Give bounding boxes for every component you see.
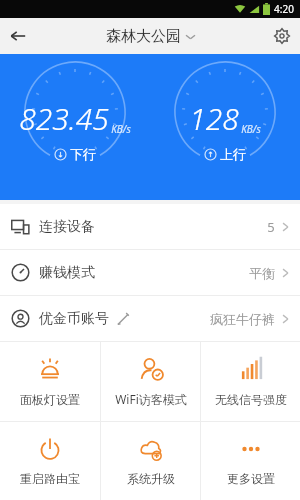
button[interactable]: 优金币账号: [0, 296, 300, 341]
button[interactable]: 赚钱模式: [0, 250, 300, 295]
staticText: 疯狂牛仔裤: [210, 311, 275, 327]
staticText: 无线信号强度: [215, 392, 287, 407]
staticText: 面板灯设置: [20, 392, 80, 407]
staticText: 下行: [70, 146, 96, 162]
button[interactable]: Settings: [264, 18, 300, 54]
button[interactable]: 更多设置: [201, 422, 300, 500]
staticText: 重启路由宝: [20, 471, 80, 486]
staticText: 优金币账号: [39, 310, 109, 328]
staticText: 128: [189, 98, 239, 139]
staticText: 823.45: [19, 98, 109, 139]
staticText: 赚钱模式: [39, 264, 95, 282]
button[interactable]: Edit: [115, 311, 131, 327]
button[interactable]: 无线信号强度: [201, 342, 300, 421]
staticText: KB/s: [111, 122, 131, 136]
staticText: 上行: [220, 146, 246, 162]
button[interactable]: Back: [0, 18, 36, 54]
staticText: WiFi访客模式: [115, 391, 187, 407]
button[interactable]: 连接设备: [0, 204, 300, 249]
button[interactable]: 重启路由宝: [0, 422, 100, 500]
staticText: 5: [267, 218, 275, 236]
button[interactable]: 面板灯设置: [0, 342, 100, 421]
button[interactable]: WiFi访客模式: [101, 342, 200, 421]
button[interactable]: 下行: [54, 146, 96, 162]
button[interactable]: 上行: [204, 146, 246, 162]
staticText: 4:20: [274, 2, 294, 16]
staticText: KB/s: [241, 122, 261, 136]
button[interactable]: 系统升级: [101, 422, 200, 500]
staticText: 平衡: [249, 265, 275, 281]
button[interactable]: 森林大公园: [106, 27, 195, 46]
staticText: 森林大公园: [106, 27, 181, 46]
staticText: 连接设备: [39, 218, 95, 236]
staticText: 更多设置: [227, 471, 275, 486]
staticText: 系统升级: [127, 471, 175, 486]
